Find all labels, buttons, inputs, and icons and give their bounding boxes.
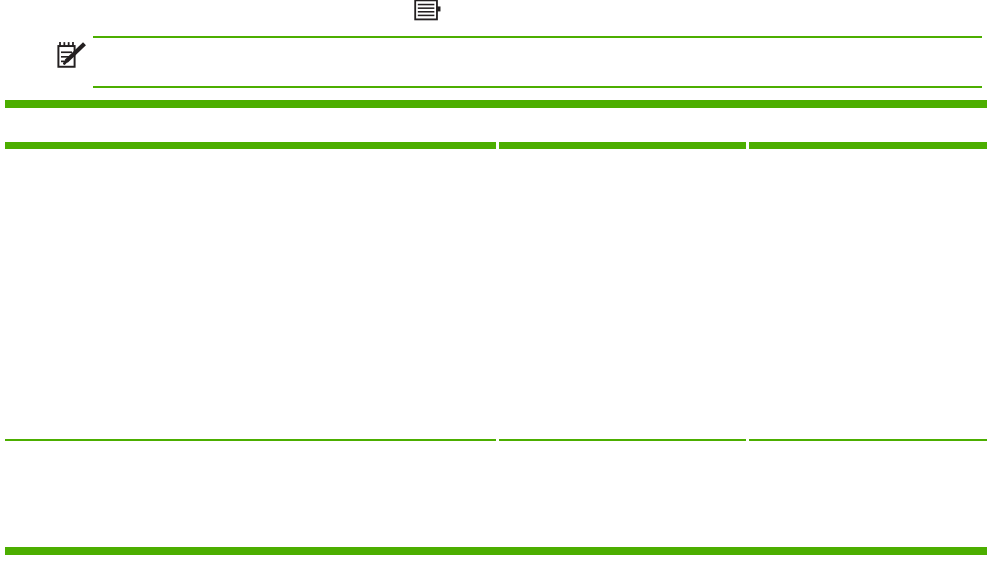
button[interactable]: Note <box>56 41 86 69</box>
button[interactable]: Document <box>412 0 444 25</box>
